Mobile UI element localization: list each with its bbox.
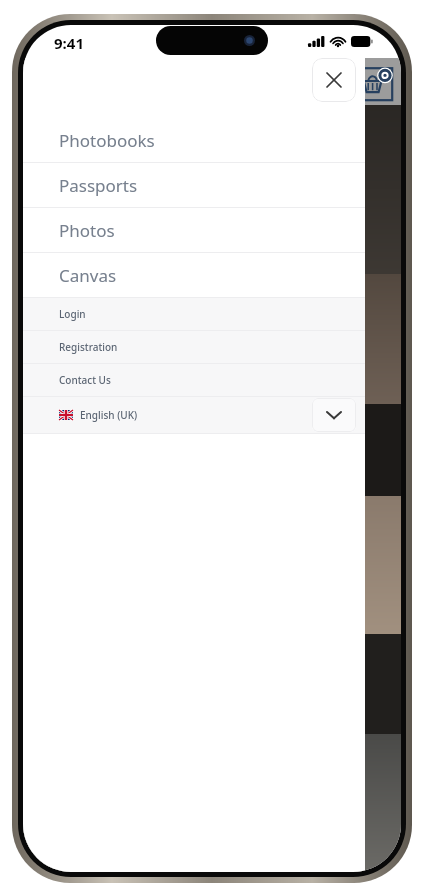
button[interactable]: Contact Us bbox=[23, 364, 365, 396]
button[interactable]: Registration bbox=[23, 331, 365, 363]
staticText: Canvas bbox=[59, 264, 117, 287]
staticText: English (UK) bbox=[80, 408, 138, 422]
staticText: Photobooks bbox=[59, 129, 155, 152]
staticText: Registration bbox=[59, 340, 118, 354]
button[interactable]: English (UK) bbox=[23, 397, 365, 433]
button[interactable]: Photobooks bbox=[23, 118, 365, 162]
button[interactable]: Passports bbox=[23, 163, 365, 207]
button[interactable]: Canvas bbox=[23, 253, 365, 297]
staticText: Login bbox=[59, 307, 86, 321]
button[interactable]: Login bbox=[23, 298, 365, 330]
staticText: Passports bbox=[59, 174, 138, 197]
button[interactable]: Change language bbox=[312, 398, 356, 432]
staticText: 9:41 bbox=[54, 33, 84, 53]
button[interactable]: Close menu bbox=[312, 58, 356, 102]
staticText: Contact Us bbox=[59, 373, 111, 387]
button[interactable]: Basket bbox=[357, 65, 397, 105]
staticText: Photos bbox=[59, 219, 115, 242]
button[interactable]: Photos bbox=[23, 208, 365, 252]
